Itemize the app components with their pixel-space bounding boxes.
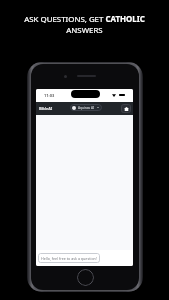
staticText: Aquinas AI (78, 106, 95, 110)
button[interactable]: Home (77, 269, 94, 286)
button[interactable]: Home (121, 104, 131, 113)
staticText: ASK QUESTIONS, GET CATHOLIC ANSWERS (0, 14, 169, 36)
staticText: 11:03 (44, 93, 55, 98)
staticText: Hello, feel free to ask a question! (41, 256, 97, 261)
button[interactable]: Hello, feel free to ask a question! (38, 253, 100, 263)
button[interactable]: Aquinas AI (70, 104, 102, 111)
